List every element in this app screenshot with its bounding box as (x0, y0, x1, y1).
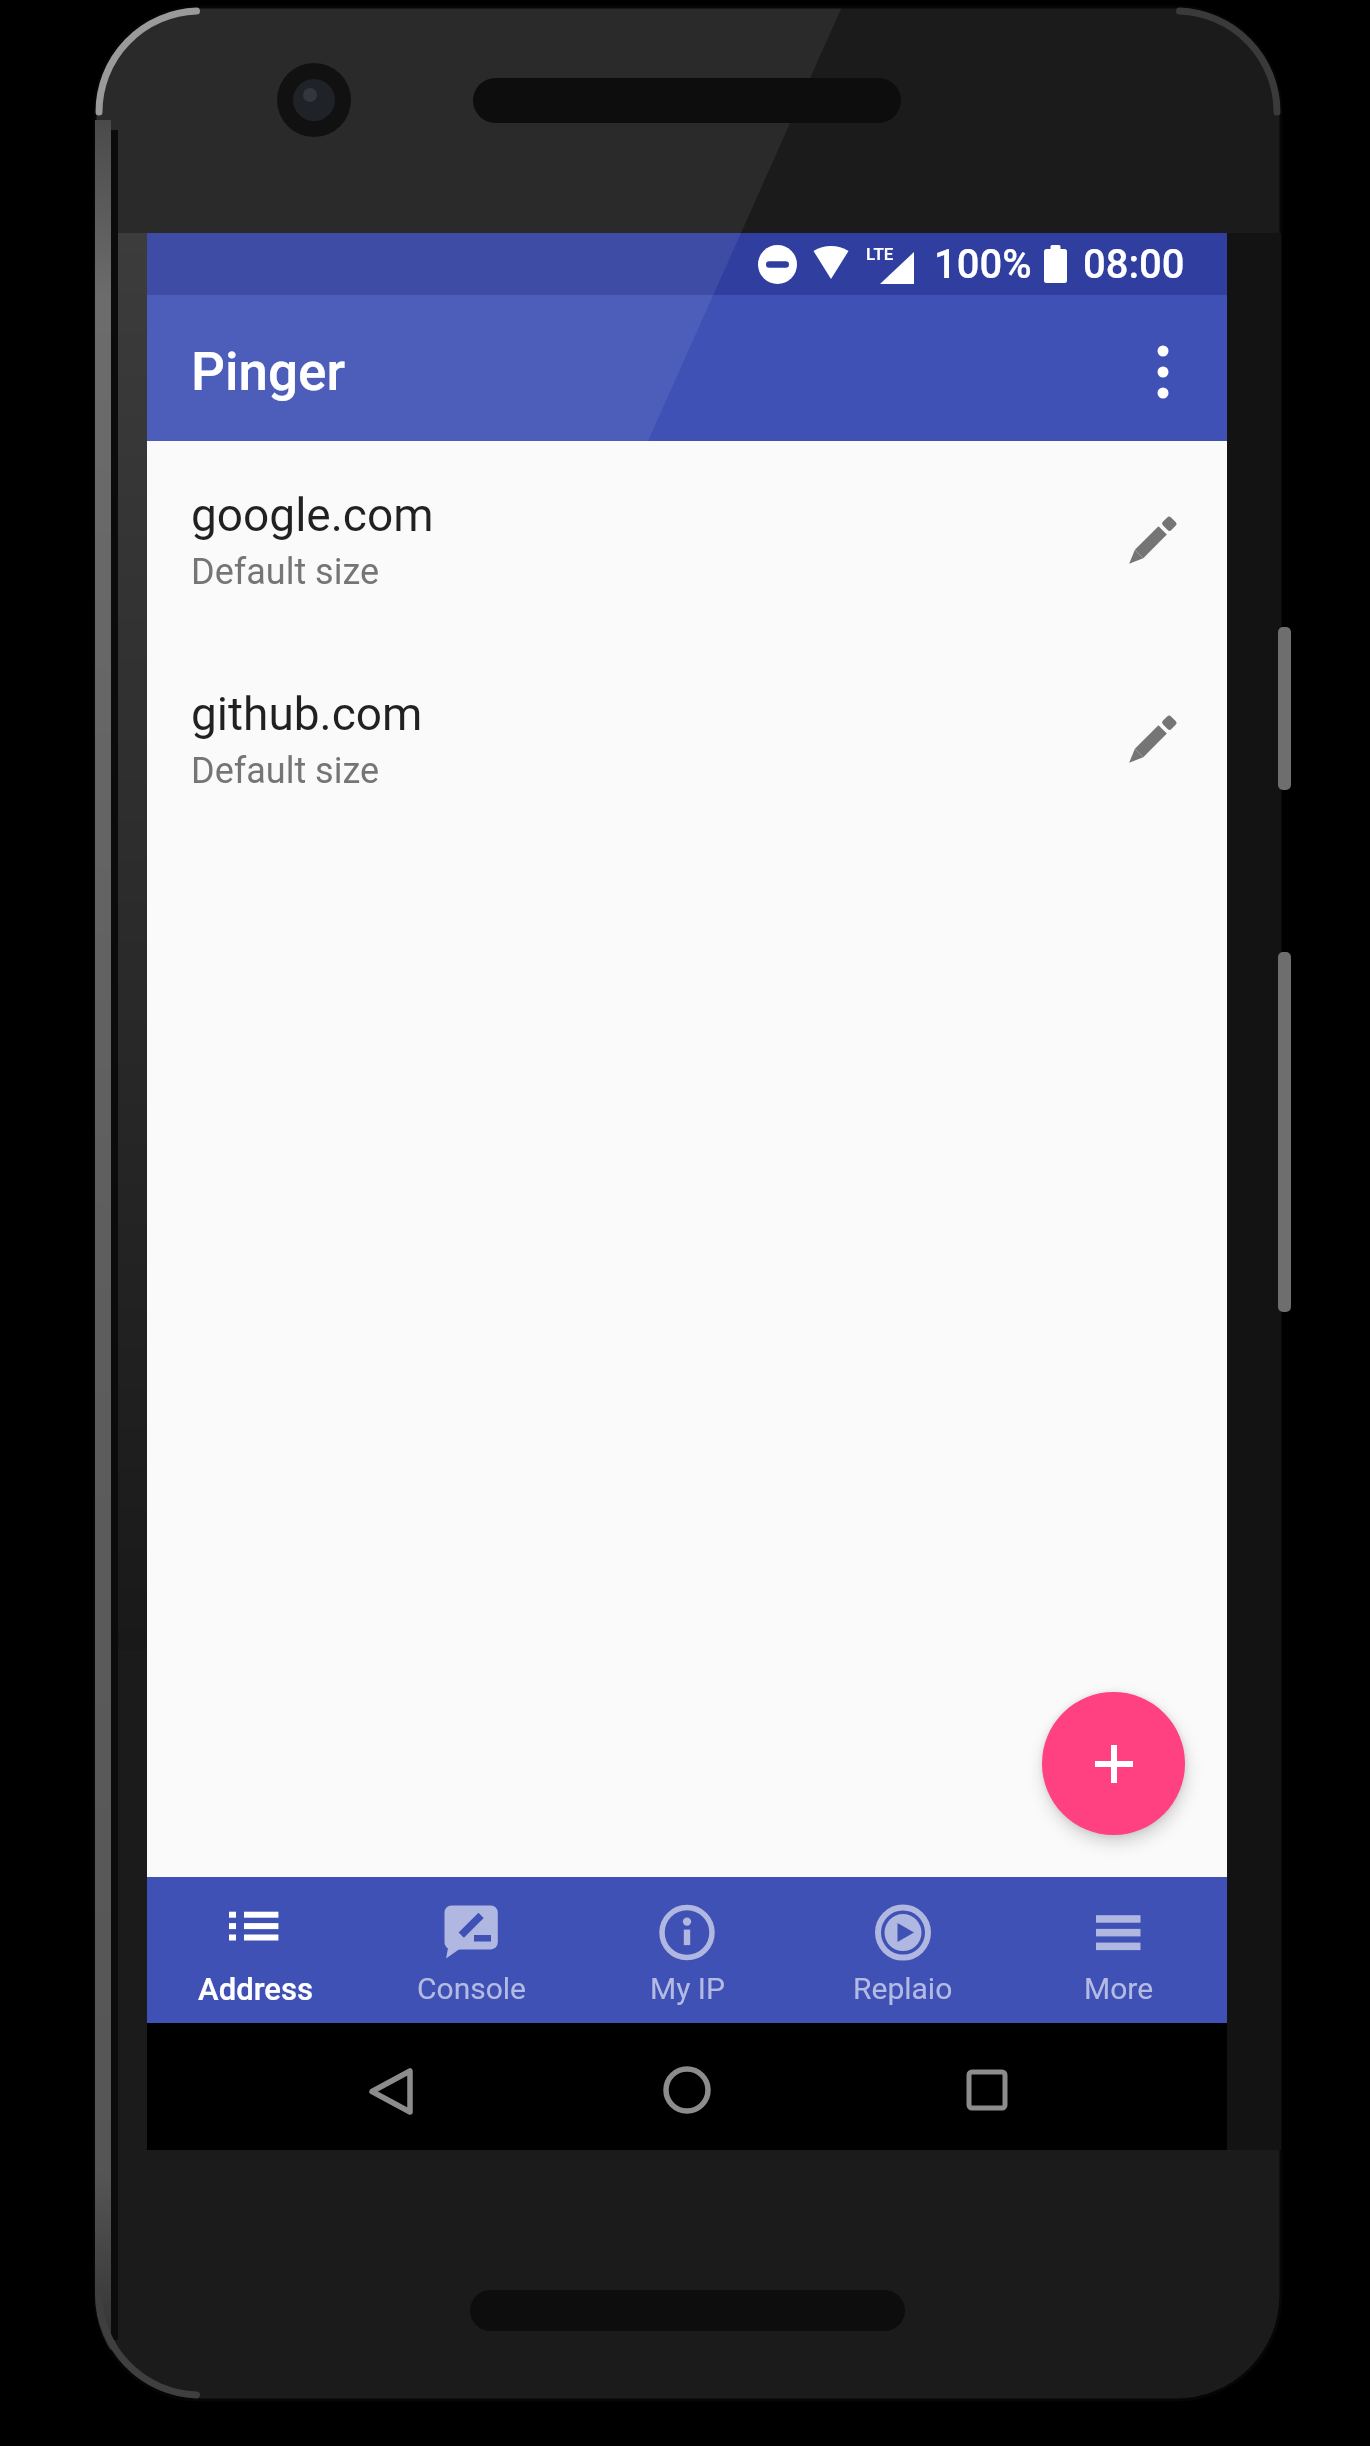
button[interactable]: My IP (579, 1877, 795, 2023)
button[interactable] (1120, 708, 1184, 772)
button[interactable]: Console (363, 1877, 579, 2023)
staticText: Console (417, 1971, 526, 2006)
staticText: Default size (191, 750, 380, 792)
staticText: My IP (650, 1971, 725, 2006)
button[interactable]: Replaio (795, 1877, 1011, 2023)
staticText: Replaio (853, 1971, 953, 2006)
staticText: Default size (191, 551, 380, 593)
staticText: Address (198, 1971, 313, 2007)
button[interactable]: More (1011, 1877, 1227, 2023)
staticText: github.com (191, 687, 423, 741)
button[interactable]: google.com (147, 441, 1227, 640)
staticText: More (1084, 1971, 1154, 2006)
button[interactable] (1120, 509, 1184, 573)
staticText: google.com (191, 488, 434, 542)
button[interactable]: Address (147, 1877, 363, 2023)
staticText: Pinger (191, 341, 346, 403)
staticText: LTE (866, 244, 894, 264)
button[interactable] (1139, 344, 1187, 392)
button[interactable]: github.com (147, 640, 1227, 839)
button[interactable] (1042, 1692, 1185, 1835)
staticText: 08:00 (1083, 241, 1185, 288)
staticText: 100% (934, 241, 1032, 288)
